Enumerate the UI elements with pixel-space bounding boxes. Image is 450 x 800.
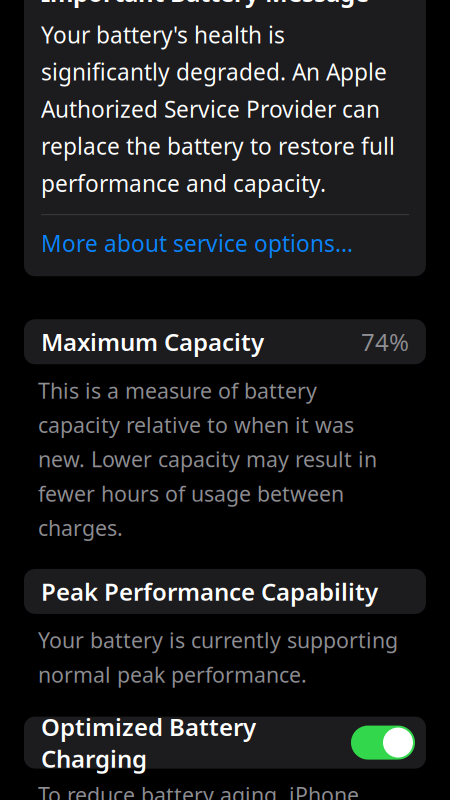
staticText: 74% <box>361 326 409 358</box>
staticText: To reduce battery aging, iPhone learns f… <box>38 781 402 800</box>
staticText: Important Battery Message <box>41 0 369 9</box>
button[interactable]: More about service options... <box>41 215 409 271</box>
staticText: Optimized Battery Charging <box>41 711 256 774</box>
staticText: Your battery's health is significantly d… <box>41 20 395 198</box>
staticText: More about service options... <box>41 228 353 258</box>
staticText: Maximum Capacity <box>41 326 264 358</box>
button[interactable]: Optimized Battery Charging <box>351 726 415 760</box>
staticText: Your battery is currently supporting nor… <box>38 626 398 689</box>
staticText: This is a measure of battery capacity re… <box>38 376 377 542</box>
staticText: Peak Performance Capability <box>41 575 378 607</box>
